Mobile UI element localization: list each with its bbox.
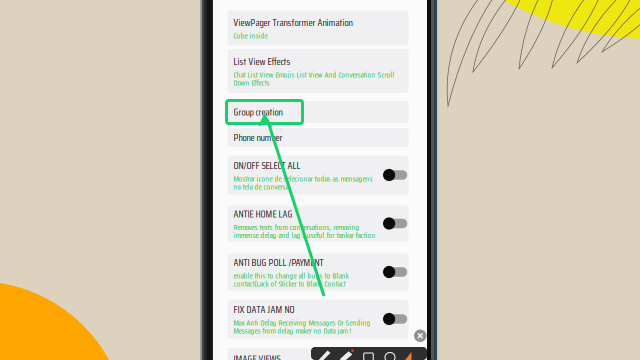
button[interactable]: Close markup xyxy=(414,329,426,342)
button[interactable]: ON/OFF SELECT ALL xyxy=(227,155,408,194)
staticText: enable this to change all bugs to Blank … xyxy=(233,272,348,288)
button[interactable]: IMAGE VIEWS xyxy=(227,348,408,360)
staticText: Cube inside xyxy=(233,32,267,40)
staticText: Max Anti Delay Receiving Messages Or Sen… xyxy=(233,319,370,335)
staticText: IMAGE VIEWS xyxy=(233,353,280,360)
staticText: ON/OFF SELECT ALL xyxy=(233,159,300,172)
button[interactable]: List View Effects xyxy=(227,49,408,93)
staticText: FIX DATA JAM NO xyxy=(233,303,294,316)
staticText: ANTIE HOME LAG xyxy=(233,208,292,220)
staticText: Phone number xyxy=(233,131,282,144)
staticText: Removes texts from conversations, removi… xyxy=(233,223,375,239)
button[interactable]: FIX DATA JAM NO xyxy=(227,299,408,338)
button[interactable]: ANTI BUG POLL /PAYMENT xyxy=(227,253,408,290)
button[interactable]: Arrow xyxy=(401,349,421,360)
button[interactable]: Pen xyxy=(314,349,336,360)
button[interactable]: Group creation xyxy=(227,101,408,123)
button[interactable]: Highlighter xyxy=(336,349,358,360)
staticText: ANTI BUG POLL /PAYMENT xyxy=(233,256,323,269)
staticText: Chat List View Emojis List View And Conv… xyxy=(233,71,394,87)
button[interactable]: Phone number xyxy=(227,128,408,147)
button[interactable]: Shape xyxy=(358,349,379,360)
button[interactable]: ViewPager Transformer Animation xyxy=(227,10,408,45)
staticText: Group creation xyxy=(233,106,282,118)
staticText: List View Effects xyxy=(233,55,290,68)
staticText: Mostrar icone de selecionar todas as men… xyxy=(233,175,372,191)
button[interactable]: Lasso select xyxy=(379,349,401,360)
button[interactable]: ANTIE HOME LAG xyxy=(227,205,408,241)
staticText: ViewPager Transformer Animation xyxy=(233,16,352,29)
